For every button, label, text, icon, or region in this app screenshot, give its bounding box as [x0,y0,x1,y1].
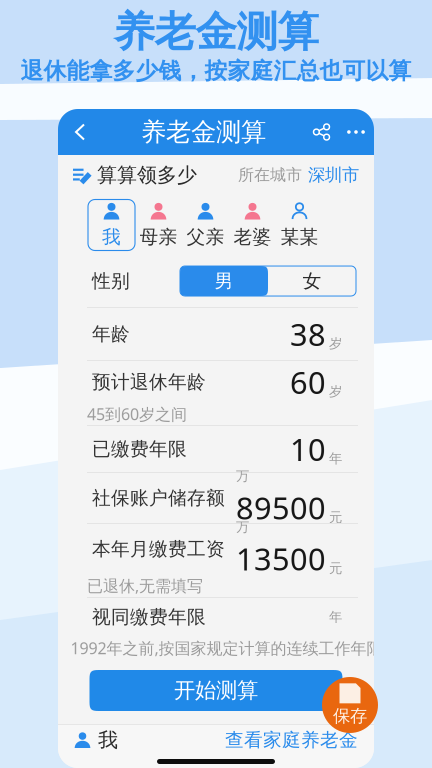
staticText: 我 [102,225,121,248]
staticText: 60 [290,362,326,402]
staticText: 元 [329,560,342,577]
staticText: 养老金测算 [113,7,318,57]
button[interactable]: 返回 [58,109,102,155]
staticText: 开始测算 [174,677,258,704]
staticText: 退休能拿多少钱，按家庭汇总也可以算 [20,57,411,85]
button[interactable]: 某某 [276,199,323,250]
staticText: 元 [329,509,342,526]
staticText: 已缴费年限 [92,437,187,460]
button[interactable]: 女 [268,266,356,296]
staticText: 89500 [236,487,326,528]
button[interactable]: 我 [88,199,135,250]
staticText: 保存 [333,705,367,727]
staticText: 女 [302,269,321,292]
staticText: 养老金测算 [141,116,266,147]
staticText: 母亲 [139,225,177,248]
staticText: 性别 [92,269,130,292]
button[interactable]: 深圳市 [308,164,359,186]
staticText: 某某 [280,225,318,248]
button[interactable]: 母亲 [135,199,182,250]
staticText: 年 [329,450,342,467]
staticText: 社保账户储存额 [92,486,225,509]
button[interactable]: 老婆 [229,199,276,250]
staticText: 算算领多少 [97,163,197,187]
staticText: 父亲 [186,225,224,248]
staticText: 1992年之前,按国家规定计算的连续工作年限 [70,637,382,659]
staticText: 本年月缴费工资 [92,537,225,560]
staticText: 岁 [329,383,342,400]
staticText: 深圳市 [308,164,359,186]
button[interactable]: 分享 [305,109,338,155]
staticText: 我 [98,728,118,752]
button[interactable]: 父亲 [182,199,229,250]
button[interactable]: 男 [180,266,268,296]
staticText: 45到60岁之间 [87,403,187,425]
staticText: 年 [329,609,342,625]
staticText: 男 [214,269,233,292]
button[interactable]: 开始测算 [89,670,342,711]
staticText: 万 [236,468,249,484]
staticText: 已退休,无需填写 [87,575,203,596]
staticText: 视同缴费年限 [92,605,206,628]
staticText: 年龄 [92,322,130,345]
staticText: 查看家庭养老金 [225,728,358,751]
button[interactable]: 保存 [322,677,378,733]
staticText: 预计退休年龄 [92,370,206,393]
button[interactable]: 我 [74,728,118,752]
staticText: 万 [236,519,249,535]
button[interactable]: 查看家庭养老金 [225,728,358,751]
staticText: 10 [290,429,326,469]
button[interactable]: 更多 [338,109,374,155]
staticText: 13500 [236,538,326,579]
staticText: 老婆 [233,225,271,248]
staticText: 所在城市 [238,165,302,185]
staticText: 岁 [329,335,342,352]
staticText: 38 [290,314,326,354]
